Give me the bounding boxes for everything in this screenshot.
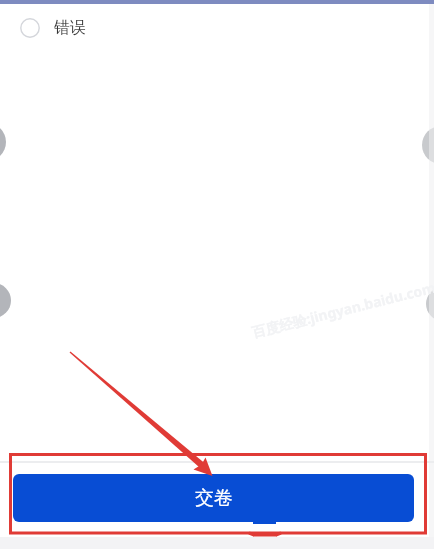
staticText: 错误 [54, 18, 86, 38]
button[interactable]: Next page [426, 287, 434, 321]
button[interactable]: 交卷 [13, 474, 414, 522]
button[interactable]: Next question [422, 126, 434, 164]
button[interactable]: 错误 [0, 11, 434, 45]
button[interactable]: Previous question [0, 123, 6, 161]
staticText: 百度经验:jingyan.baidu.com [250, 278, 434, 342]
button[interactable]: Previous page [0, 283, 11, 318]
staticText: 交卷 [195, 486, 233, 510]
